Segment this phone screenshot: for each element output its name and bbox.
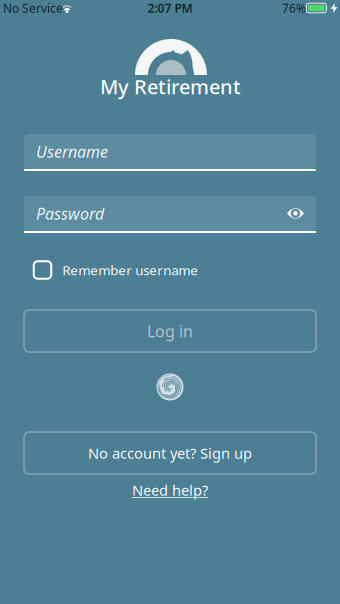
staticText: No account yet? Sign up	[88, 443, 252, 463]
staticText: Remember username	[62, 261, 198, 279]
staticText: 2:07 PM	[147, 0, 192, 16]
button[interactable]: Log in with Touch ID	[156, 373, 183, 400]
staticText: Log in	[147, 320, 193, 342]
staticText: Username	[36, 141, 108, 162]
button[interactable]: Need help?	[132, 480, 208, 500]
staticText: Need help?	[132, 480, 208, 500]
button[interactable]: Remember username	[34, 261, 198, 279]
button[interactable]: No account yet? Sign up	[24, 432, 316, 474]
button[interactable]: Username	[24, 134, 316, 171]
staticText: 76%	[282, 0, 306, 16]
button[interactable]: Show password	[287, 208, 304, 219]
staticText: My Retirement	[100, 73, 241, 100]
staticText: No Service	[3, 0, 63, 16]
button[interactable]: Password	[24, 196, 316, 233]
button[interactable]: Log in	[24, 310, 316, 352]
staticText: Password	[36, 203, 104, 224]
